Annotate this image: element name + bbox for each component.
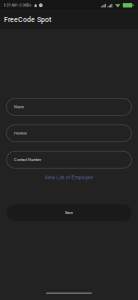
staticText: Save (65, 210, 73, 215)
staticText: FreeCode Spot (4, 16, 51, 24)
staticText: Name (14, 105, 24, 109)
button[interactable]: Save (6, 204, 131, 221)
staticText: Contact Number (14, 157, 41, 162)
staticText: Position (14, 131, 27, 135)
staticText: View List of Employee (44, 175, 93, 180)
staticText: 8:39 AM | 0.0KB/s (3, 3, 31, 7)
button[interactable]: View List of Employee (6, 168, 131, 187)
